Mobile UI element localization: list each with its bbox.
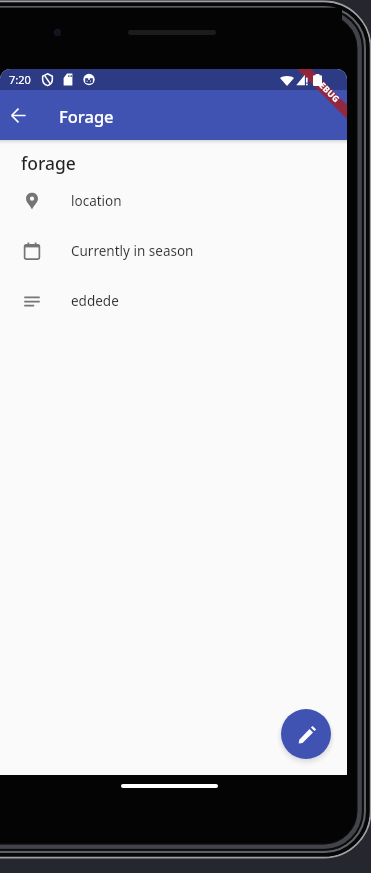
staticText: Currently in season xyxy=(71,242,194,260)
button[interactable]: Currently in season xyxy=(0,226,347,276)
staticText: Forage xyxy=(59,105,114,127)
button[interactable]: location xyxy=(0,176,347,226)
staticText: forage xyxy=(21,151,76,175)
staticText: DEBUG xyxy=(312,75,343,106)
button[interactable]: eddede xyxy=(0,276,347,326)
staticText: location xyxy=(71,192,122,210)
button[interactable]: Back xyxy=(0,97,36,133)
button[interactable]: Edit xyxy=(281,709,331,759)
staticText: 7:20 xyxy=(9,72,31,87)
staticText: eddede xyxy=(71,292,119,310)
